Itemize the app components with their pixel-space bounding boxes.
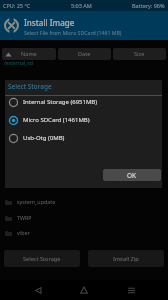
button[interactable]: Micro SDCard (1461MB): [5, 111, 162, 129]
staticText: Select Storage: [23, 255, 61, 263]
button[interactable]: Select Storage: [4, 250, 80, 267]
staticText: Select Storage: [8, 82, 52, 91]
button[interactable]: viber: [0, 225, 168, 240]
staticText: Battery: 96%: [132, 2, 165, 9]
staticText: Date: [78, 50, 91, 58]
button[interactable]: TWRP: [0, 210, 168, 225]
button[interactable]: Size: [113, 48, 166, 60]
staticText: Micro SDCard (1461MB): [23, 116, 90, 124]
staticText: Size: [134, 50, 145, 58]
staticText: Name: [21, 50, 37, 58]
button[interactable]: Internal Storage (6951MB): [5, 93, 162, 111]
staticText: OK: [127, 171, 137, 180]
staticText: TWRP: [17, 214, 32, 221]
button[interactable]: Recents: [121, 280, 141, 300]
staticText: viber: [17, 229, 30, 236]
staticText: /external_sd: [4, 60, 33, 67]
staticText: Internal Storage (6951MB): [23, 98, 98, 106]
button[interactable]: OK: [103, 169, 161, 181]
staticText: CPU: 25 °C: [3, 2, 31, 9]
button[interactable]: Usb-Otg (0MB): [5, 129, 162, 147]
button[interactable]: Home: [74, 280, 94, 300]
staticText: 5:03 AM: [71, 2, 92, 9]
button[interactable]: Name: [2, 48, 56, 60]
staticText: system_update: [17, 198, 56, 205]
button[interactable]: Back: [28, 280, 48, 300]
staticText: Install Image: [24, 17, 75, 28]
staticText: Select File from Micro SDCard (1461 MB): [24, 29, 122, 36]
button[interactable]: Install Zip: [88, 250, 164, 267]
button[interactable]: Date: [58, 48, 111, 60]
staticText: Install Zip: [113, 255, 139, 263]
button[interactable]: system_update: [0, 194, 168, 209]
button[interactable]: TWRP: [4, 18, 19, 33]
staticText: Usb-Otg (0MB): [23, 134, 65, 142]
